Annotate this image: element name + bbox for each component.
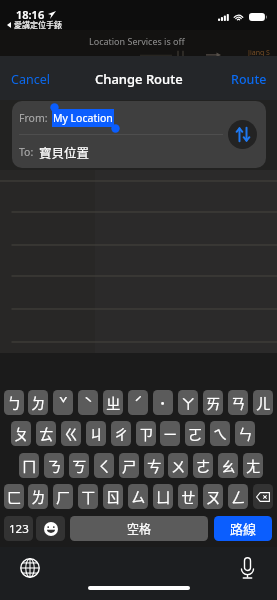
staticText: Change Route [95,70,183,88]
button[interactable]: ㄣ [235,421,255,446]
button[interactable]: ㄜ [193,453,213,478]
button[interactable]: ㄋ [44,453,64,478]
button[interactable]: ㄆ [11,421,31,446]
staticText: ㄕ [122,455,137,476]
staticText: ㄩ [156,486,171,507]
button[interactable]: ㄤ [243,453,263,478]
staticText: Route [231,71,267,88]
staticText: ㄡ [206,486,221,507]
staticText: ㄧ [163,423,178,444]
staticText: ㄓ [106,392,121,413]
staticText: ㄜ [196,455,211,476]
staticText: ㄇ [22,455,37,476]
staticText: ㄐ [89,423,104,444]
button[interactable]: ㄗ [136,421,156,446]
button[interactable]: ㄌ [28,484,48,509]
button[interactable]: Emoji [36,516,65,541]
button[interactable]: ㄅ [4,390,24,415]
button[interactable]: Swap start and destination [228,120,257,149]
staticText: ˋ [84,392,93,413]
staticText: Cancel [11,71,50,88]
staticText: ㄒ [81,486,96,507]
staticText: ㄋ [47,455,62,476]
staticText: ㄏ [56,486,71,507]
button[interactable]: ㄐ [86,421,106,446]
staticText: ㄙ [131,486,146,507]
button[interactable]: 空格 [70,516,208,541]
button[interactable]: 123 [4,516,33,541]
button[interactable]: ㄡ [203,484,223,509]
staticText: ㄍ [64,423,79,444]
staticText: 愛講定位手錶 [14,19,62,31]
button[interactable]: ㄔ [111,421,131,446]
staticText: ㄣ [238,423,253,444]
button[interactable]: ㄛ [185,421,205,446]
staticText: ㄈ [7,486,22,507]
staticText: ㄤ [246,455,261,476]
staticText: 路線 [230,519,257,538]
button[interactable]: Route [220,65,277,94]
button[interactable]: ㄩ [153,484,173,509]
button[interactable]: ㄧ [160,421,180,446]
staticText: From: [19,111,48,125]
staticText: ㄝ [181,486,196,507]
button[interactable]: To: [12,135,266,168]
staticText: ㄅ [7,392,22,413]
staticText: ˇ [59,392,68,413]
staticText: ㄆ [14,423,29,444]
button[interactable]: ㄦ [253,390,273,415]
button[interactable]: ㄘ [144,453,164,478]
button[interactable]: ㄞ [203,390,223,415]
button[interactable]: ㄠ [218,453,238,478]
staticText: ㄥ [231,486,246,507]
button[interactable]: 路線 [214,516,272,541]
staticText: ㄑ [97,455,112,476]
staticText: ㄟ [213,423,228,444]
button[interactable]: ㄝ [178,484,198,509]
button[interactable]: ㄟ [210,421,230,446]
staticText: 空格 [127,520,152,537]
staticText: 18:16 [16,7,45,22]
staticText: ㄛ [188,423,203,444]
staticText: ˙ [159,392,167,413]
button[interactable]: ㄢ [228,390,248,415]
button[interactable]: ㄥ [228,484,248,509]
button[interactable]: ㄚ [178,390,198,415]
button[interactable]: ˊ [128,390,148,415]
button[interactable]: ˋ [78,390,98,415]
staticText: Jiang S [248,48,270,58]
button[interactable]: Dictation [235,556,259,580]
staticText: 寶貝位置 [39,143,90,161]
staticText: ㄌ [31,486,46,507]
button[interactable]: ㄓ [103,390,123,415]
button[interactable]: ㄊ [36,421,56,446]
button[interactable]: ˇ [53,390,73,415]
button[interactable]: Change keyboard [18,556,42,580]
button[interactable]: ㄍ [61,421,81,446]
button[interactable]: ㄎ [69,453,89,478]
button[interactable]: ˙ [153,390,173,415]
staticText: ㄘ [147,455,162,476]
staticText: ㄖ [106,486,121,507]
staticText: To: [19,145,34,159]
button[interactable]: ㄨ [168,453,188,478]
staticText: ㄦ [256,392,271,413]
staticText: ㄢ [231,392,246,413]
button[interactable]: ㄈ [4,484,24,509]
staticText: ㄞ [206,392,221,413]
button[interactable]: ㄑ [94,453,114,478]
button[interactable]: ㄖ [103,484,123,509]
button[interactable]: ㄒ [78,484,98,509]
button[interactable]: Cancel [0,65,61,94]
button[interactable]: ㄏ [53,484,73,509]
button[interactable]: ㄙ [128,484,148,509]
button[interactable]: ㄕ [119,453,139,478]
button[interactable]: Backspace [253,484,273,509]
staticText: ˊ [134,392,143,413]
staticText: ㄊ [39,423,54,444]
staticText: ㄔ [114,423,129,444]
button[interactable]: ㄇ [19,453,39,478]
button[interactable]: ㄉ [28,390,48,415]
button[interactable]: From: [12,101,266,134]
staticText: ㄎ [72,455,87,476]
